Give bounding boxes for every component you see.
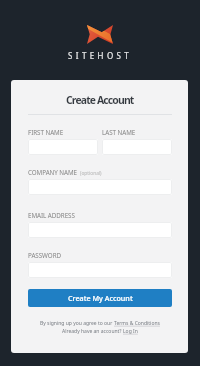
staticText: PASSWORD: [28, 251, 62, 260]
button[interactable]: [102, 139, 172, 155]
staticText: Create Account: [66, 93, 134, 106]
button[interactable]: [28, 222, 172, 238]
staticText: EMAIL ADDRESS: [28, 211, 75, 220]
button[interactable]: Create My Account: [28, 289, 172, 307]
staticText: (optional): [80, 170, 102, 177]
staticText: COMPANY NAME: [28, 168, 78, 177]
button[interactable]: [28, 139, 98, 155]
button[interactable]: [28, 262, 172, 278]
staticText: FIRST NAME: [28, 128, 64, 137]
button[interactable]: Terms & Conditions: [114, 320, 160, 327]
staticText: Create My Account: [68, 293, 133, 303]
button[interactable]: Log In: [123, 328, 138, 335]
staticText: Already have an account?: [62, 328, 123, 335]
staticText: By signing up you agree to our: [40, 320, 114, 327]
staticText: SITEHOST: [68, 50, 133, 61]
button[interactable]: [28, 179, 172, 195]
staticText: LAST NAME: [102, 128, 136, 137]
